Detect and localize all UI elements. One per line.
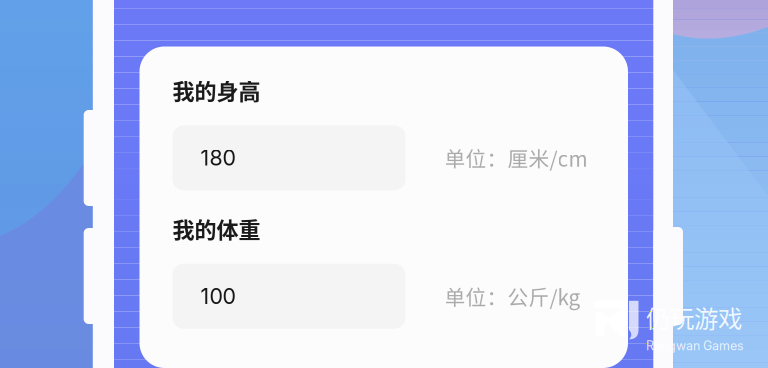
staticText: 单位：厘米/cm — [444, 143, 587, 173]
staticText: Rengwan Games — [646, 338, 744, 353]
staticText: 我的身高 — [172, 74, 260, 106]
staticText: 我的体重 — [172, 212, 260, 244]
button[interactable]: 100 — [172, 264, 405, 329]
staticText: 单位：公斤/kg — [444, 281, 580, 311]
staticText: 仍玩游戏 — [646, 299, 742, 335]
staticText: 180 — [200, 145, 235, 171]
staticText: 100 — [200, 283, 235, 309]
button[interactable]: 180 — [172, 125, 405, 190]
